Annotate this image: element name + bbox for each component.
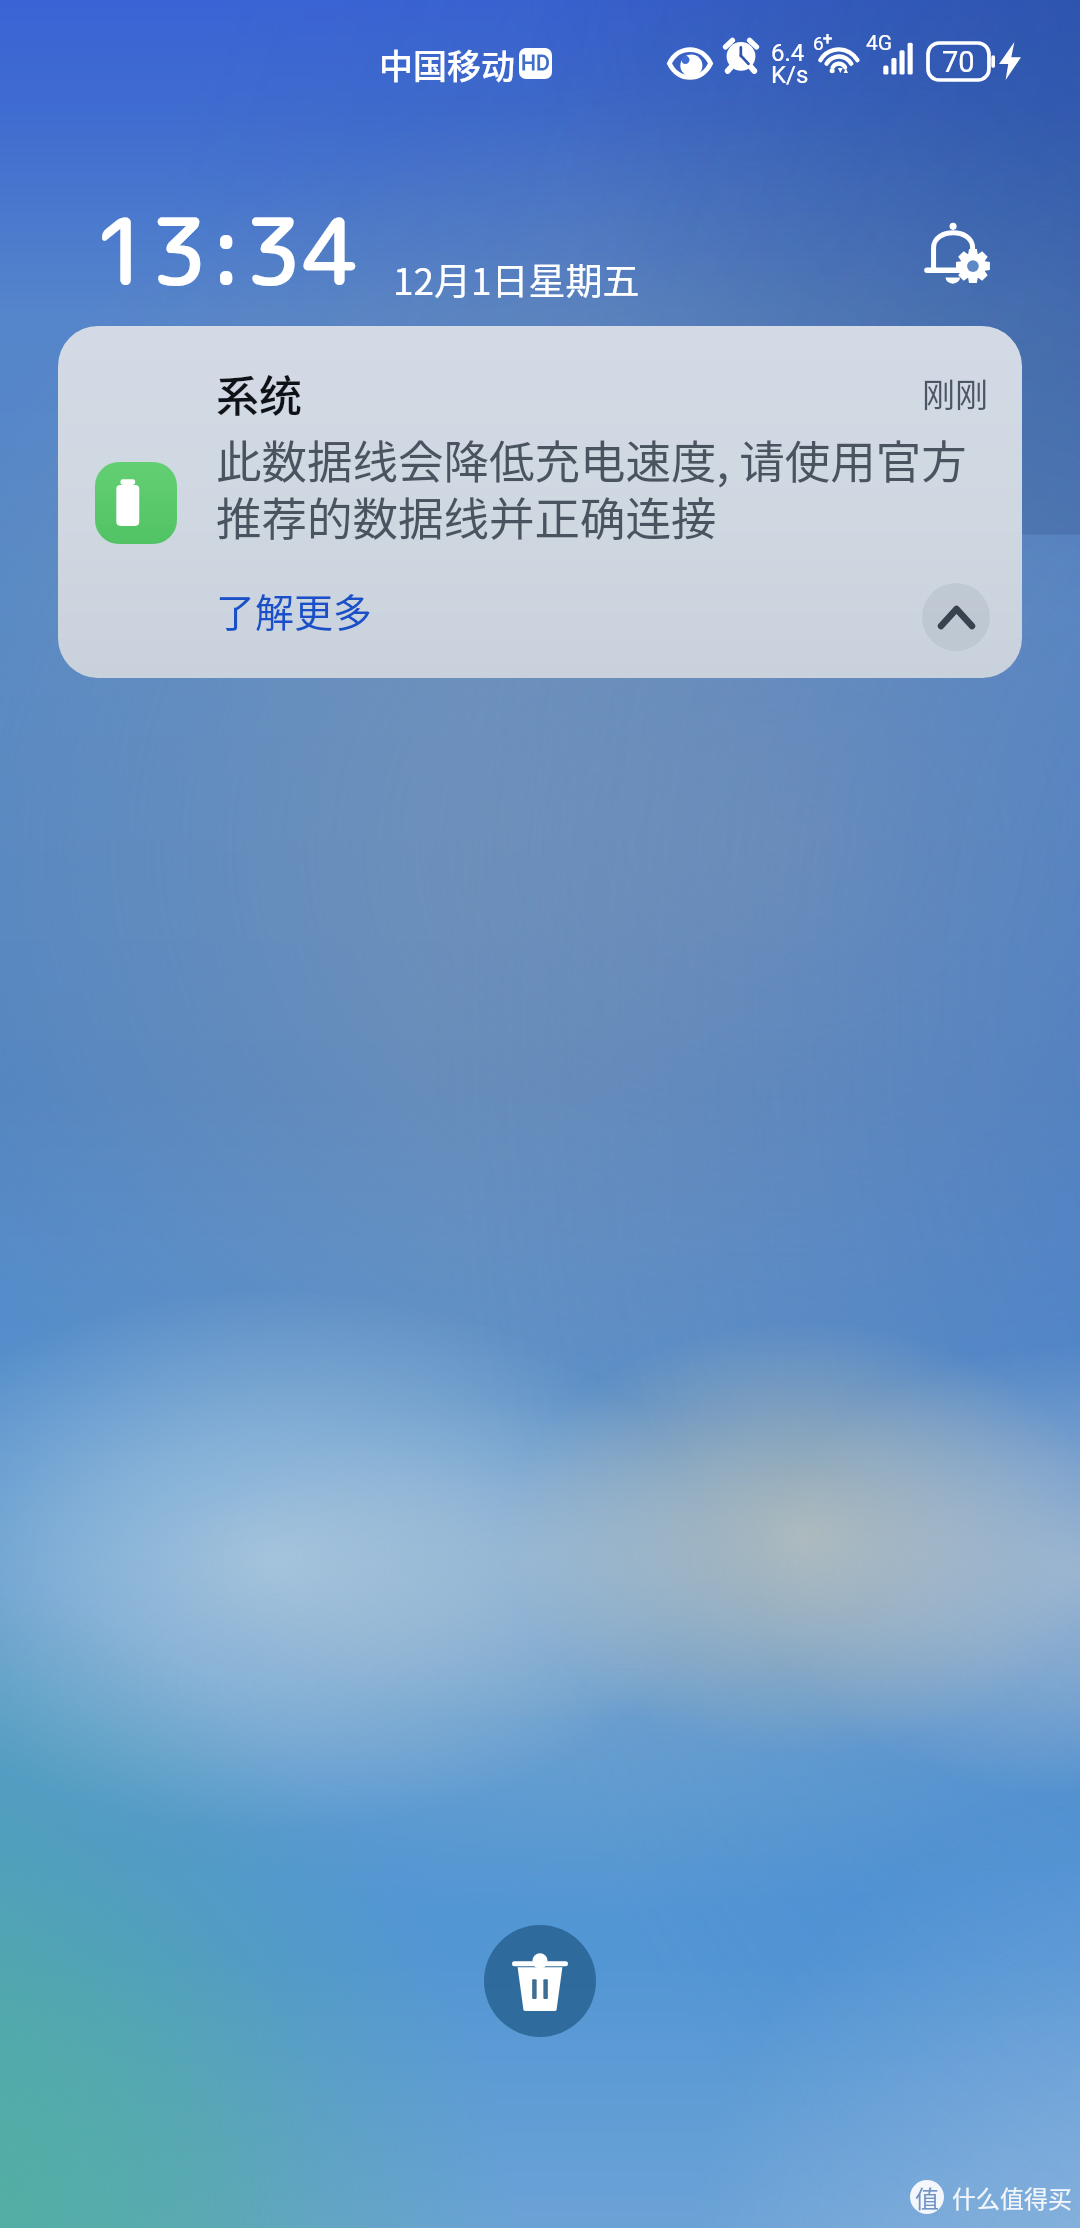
staticText: +	[823, 29, 833, 48]
staticText: 了解更多	[216, 582, 373, 638]
button[interactable]: Notification settings	[914, 208, 1000, 294]
staticText: HD	[521, 51, 550, 76]
button[interactable]: Collapse	[890, 551, 1022, 678]
staticText: 6	[813, 32, 824, 54]
button[interactable]: 系统	[58, 326, 1022, 678]
button[interactable]: Clear all notifications	[484, 1925, 596, 2037]
staticText: 系统	[216, 362, 302, 424]
staticText: 值	[915, 2180, 939, 2214]
staticText: 中国移动	[379, 40, 515, 89]
staticText: 什么值得买	[952, 2180, 1072, 2215]
staticText: 13:34	[92, 186, 361, 314]
staticText: 4G	[866, 31, 893, 56]
button[interactable]: 了解更多	[216, 582, 373, 638]
staticText: 70	[942, 45, 975, 79]
staticText: 刚刚	[922, 369, 988, 417]
staticText: 6.4 K/s	[771, 39, 809, 88]
staticText: 12月1日星期五	[393, 252, 640, 306]
staticText: 此数据线会降低充电速度, 请使用官方 推荐的数据线并正确连接	[216, 426, 967, 550]
